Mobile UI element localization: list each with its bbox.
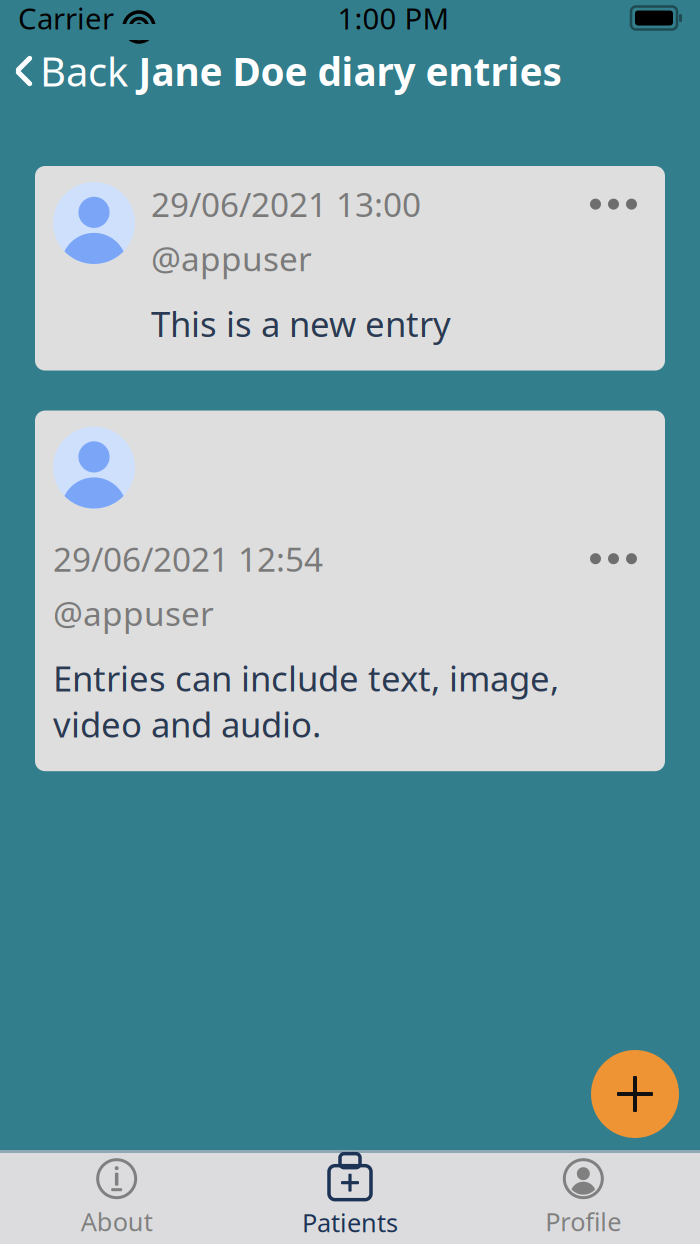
button[interactable]: Back (0, 36, 142, 105)
staticText: About (81, 1205, 153, 1238)
staticText: Back (40, 44, 128, 97)
staticText: Carrier (18, 0, 114, 37)
staticText: Profile (545, 1205, 621, 1238)
staticText: This is a new entry (151, 300, 451, 346)
button[interactable]: 29/06/2021 13:00 (35, 166, 665, 371)
button[interactable]: More options (580, 541, 647, 576)
button[interactable]: More options (580, 187, 647, 222)
staticText: 1:00 PM (337, 0, 449, 37)
staticText: Patients (302, 1206, 398, 1239)
button[interactable]: About (0, 1149, 233, 1244)
button[interactable]: Add entry (591, 1050, 679, 1138)
staticText: Jane Doe diary entries (138, 45, 561, 97)
button[interactable]: 29/06/2021 12:54 (35, 411, 665, 771)
staticText: Entries can include text, image, video a… (53, 655, 559, 747)
staticText: 29/06/2021 12:54 (53, 537, 323, 581)
staticText: 29/06/2021 13:00 (151, 182, 421, 226)
staticText: @appuser (53, 591, 214, 635)
button[interactable]: Patients (233, 1148, 467, 1244)
button[interactable]: Profile (467, 1149, 700, 1244)
staticText: @appuser (151, 236, 312, 281)
